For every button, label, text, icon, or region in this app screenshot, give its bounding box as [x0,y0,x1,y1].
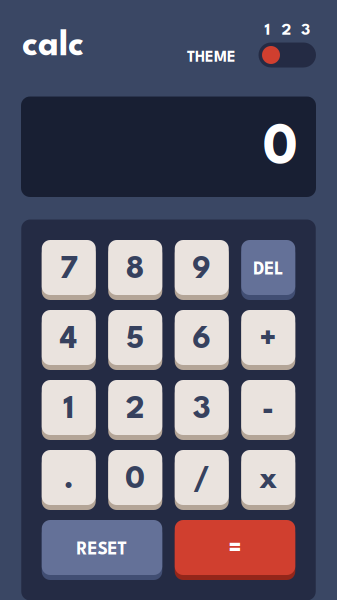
staticText: + [259,325,277,355]
button[interactable]: 1 [42,380,96,440]
button[interactable]: 0 [108,450,162,510]
button[interactable]: 4 [42,310,96,370]
staticText: 0 [125,465,145,495]
button[interactable]: DEL [241,240,295,300]
staticText: 3 [193,395,211,425]
button[interactable]: + [241,310,295,370]
staticText: 9 [192,255,211,285]
button[interactable]: 6 [175,310,229,370]
button[interactable]: x [241,450,295,510]
button[interactable]: = [175,520,295,580]
staticText: = [228,538,241,562]
staticText: 8 [126,255,145,285]
staticText: THEME [187,50,236,65]
staticText: 1 [264,22,270,38]
button[interactable]: 8 [108,240,162,300]
button[interactable]: - [241,380,295,440]
button[interactable]: 7 [42,240,96,300]
button[interactable]: . [42,450,96,510]
button[interactable]: / [175,450,229,510]
staticText: calc [22,29,84,63]
button[interactable]: Theme selector [258,42,316,67]
staticText: 6 [192,325,211,355]
button[interactable]: RESET [42,520,162,580]
button[interactable]: 9 [175,240,229,300]
staticText: 2 [126,395,145,425]
staticText: . [64,465,74,495]
staticText: 1 [63,395,74,425]
staticText: 7 [60,255,78,285]
staticText: - [262,395,275,425]
button[interactable]: 5 [108,310,162,370]
staticText: 3 [301,22,310,38]
button[interactable]: 2 [108,380,162,440]
staticText: 0 [263,122,298,176]
staticText: 5 [126,325,144,355]
staticText: RESET [76,541,127,559]
staticText: DEL [253,261,283,279]
staticText: x [259,465,277,495]
staticText: / [193,465,210,495]
button[interactable]: 3 [175,380,229,440]
staticText: 4 [60,325,78,355]
staticText: 2 [281,22,291,38]
